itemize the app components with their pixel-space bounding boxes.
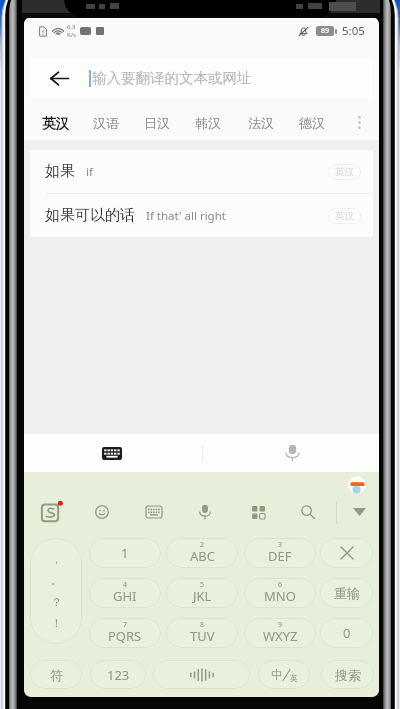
button[interactable]: Voice <box>192 499 218 525</box>
staticText: GHI <box>113 587 137 605</box>
button[interactable]: 1 <box>89 538 161 568</box>
button[interactable]: Back <box>31 58 87 98</box>
staticText: WXYZ <box>263 627 298 645</box>
staticText: ？ <box>51 595 62 609</box>
button[interactable]: 韩汉 <box>183 98 233 140</box>
staticText: PQRS <box>108 627 142 645</box>
staticText: 输入要翻译的文本或网址 <box>92 69 252 87</box>
staticText: MNO <box>264 587 296 605</box>
button[interactable]: 法汉 <box>236 98 286 140</box>
button[interactable]: 汉语 <box>81 98 131 140</box>
button[interactable]: WXYZ <box>244 618 316 648</box>
staticText: ABC <box>190 547 215 565</box>
button[interactable]: Space <box>153 660 250 689</box>
button[interactable]: Voice input <box>271 434 313 472</box>
button[interactable]: Keyboard layout <box>141 499 167 525</box>
button[interactable]: Delete <box>320 538 373 568</box>
staticText: 2 <box>200 540 205 550</box>
staticText: 6 <box>278 580 283 590</box>
staticText: 法汉 <box>248 115 274 131</box>
staticText: 5:05 <box>342 23 365 39</box>
staticText: DEF <box>268 547 292 565</box>
staticText: 搜索 <box>335 667 361 683</box>
staticText: 0 <box>343 624 351 642</box>
button[interactable]: Emoji <box>89 499 115 525</box>
button[interactable]: MNO <box>244 578 316 608</box>
staticText: 英 <box>290 673 298 683</box>
staticText: 5 <box>200 580 205 590</box>
staticText: TUV <box>190 627 215 645</box>
button[interactable]: 德汉 <box>287 98 337 140</box>
staticText: 英汉 <box>335 210 354 222</box>
button[interactable]: JKL <box>166 578 238 608</box>
staticText: 9 <box>278 620 283 630</box>
button[interactable]: 重输 <box>320 578 373 608</box>
staticText: 8 <box>200 620 205 630</box>
staticText: 重输 <box>334 585 360 601</box>
staticText: ， <box>51 552 62 566</box>
button[interactable]: More options <box>344 98 374 140</box>
button[interactable]: Keyboard <box>91 434 133 472</box>
button[interactable]: Notification <box>348 476 366 494</box>
button[interactable]: 符 <box>30 660 82 689</box>
button[interactable]: 搜索 <box>321 660 374 689</box>
button[interactable]: ABC <box>166 538 238 568</box>
button[interactable]: Sogou menu <box>39 499 65 525</box>
button[interactable]: Apps <box>245 499 271 525</box>
staticText: K/s <box>67 31 76 39</box>
staticText: 。 <box>51 573 62 587</box>
button[interactable]: 123 <box>90 660 146 689</box>
button[interactable]: PQRS <box>89 618 161 648</box>
button[interactable]: 如果可以的话 <box>30 194 373 237</box>
staticText: 如果 <box>45 162 75 181</box>
button[interactable]: 英汉 <box>30 98 80 140</box>
button[interactable]: Search <box>295 499 321 525</box>
button[interactable]: 0 <box>320 618 373 648</box>
staticText: 7 <box>123 620 128 630</box>
staticText: 韩汉 <box>195 115 221 131</box>
button[interactable]: GHI <box>89 578 161 608</box>
staticText: 1 <box>121 544 129 562</box>
staticText: 4 <box>123 580 128 590</box>
button[interactable]: TUV <box>166 618 238 648</box>
staticText: 汉语 <box>93 115 119 131</box>
staticText: If that' all right <box>146 208 226 224</box>
button[interactable]: DEF <box>244 538 316 568</box>
staticText: 如果可以的话 <box>45 206 135 225</box>
staticText: 德汉 <box>299 115 325 131</box>
button[interactable]: 如果 <box>30 150 373 193</box>
staticText: 英汉 <box>335 166 354 178</box>
button[interactable]: Chinese English toggle <box>258 660 310 689</box>
staticText: 3 <box>278 540 283 550</box>
staticText: 日汉 <box>144 115 170 131</box>
staticText: 英汉 <box>42 115 69 132</box>
staticText: 123 <box>107 666 130 684</box>
staticText: 符 <box>50 667 63 683</box>
staticText: if <box>86 164 93 180</box>
button[interactable]: Hide keyboard <box>344 497 374 527</box>
staticText: 89 <box>321 26 330 36</box>
staticText: 6.3 <box>67 23 76 31</box>
button[interactable]: Punctuation <box>30 538 82 644</box>
staticText: JKL <box>193 587 212 605</box>
staticText: ！ <box>51 616 62 630</box>
button[interactable]: 日汉 <box>132 98 182 140</box>
staticText: 中 <box>271 667 283 682</box>
